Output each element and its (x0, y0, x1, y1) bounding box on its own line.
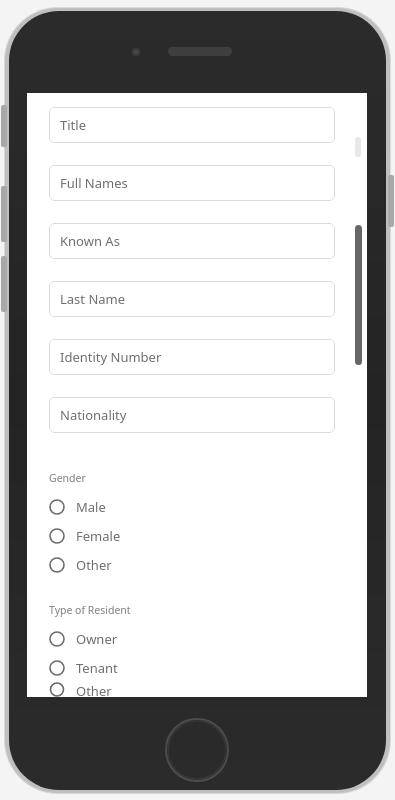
button[interactable]: Male (49, 492, 335, 521)
staticText: Gender (49, 471, 86, 485)
button[interactable]: Full Names (49, 165, 335, 201)
staticText: Male (76, 498, 106, 516)
staticText: Known As (60, 232, 120, 250)
staticText: Female (76, 527, 121, 545)
staticText: Full Names (60, 174, 128, 192)
button[interactable]: Last Name (49, 281, 335, 317)
staticText: Last Name (60, 290, 126, 308)
button[interactable]: Owner (49, 624, 335, 653)
staticText: Identity Number (60, 348, 162, 366)
staticText: Other (76, 556, 112, 574)
button[interactable]: Title (49, 107, 335, 143)
button[interactable]: Other (49, 550, 335, 579)
button[interactable]: Female (49, 521, 335, 550)
staticText: Tenant (76, 659, 118, 677)
button[interactable]: Other (49, 682, 335, 697)
staticText: Other (76, 682, 112, 697)
staticText: Nationality (60, 406, 127, 424)
button[interactable]: Identity Number (49, 339, 335, 375)
button[interactable]: Nationality (49, 397, 335, 433)
staticText: Owner (76, 630, 118, 648)
staticText: Type of Resident (49, 603, 131, 617)
button[interactable]: Known As (49, 223, 335, 259)
button[interactable]: Tenant (49, 653, 335, 682)
staticText: Title (60, 116, 86, 134)
